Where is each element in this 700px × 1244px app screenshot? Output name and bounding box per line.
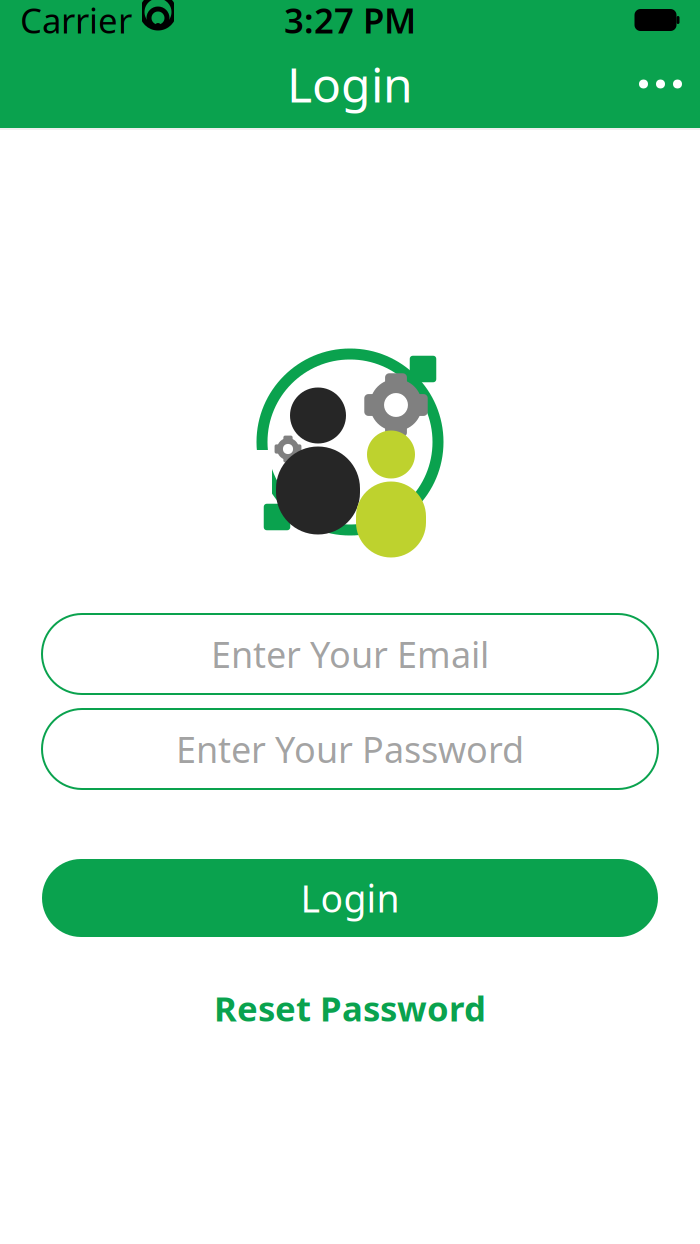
button[interactable]: Enter Your Email: [42, 614, 658, 694]
staticText: Enter Your Password: [176, 725, 524, 773]
button[interactable]: Login: [42, 859, 658, 937]
staticText: Login: [287, 52, 413, 116]
button[interactable]: Reset Password: [194, 977, 506, 1039]
staticText: Login: [300, 873, 399, 923]
staticText: Enter Your Email: [211, 630, 489, 678]
staticText: Reset Password: [214, 985, 486, 1031]
button[interactable]: More options: [621, 57, 700, 110]
staticText: 3:27 PM: [284, 0, 416, 43]
button[interactable]: Enter Your Password: [42, 709, 658, 789]
staticText: Carrier: [20, 0, 132, 43]
